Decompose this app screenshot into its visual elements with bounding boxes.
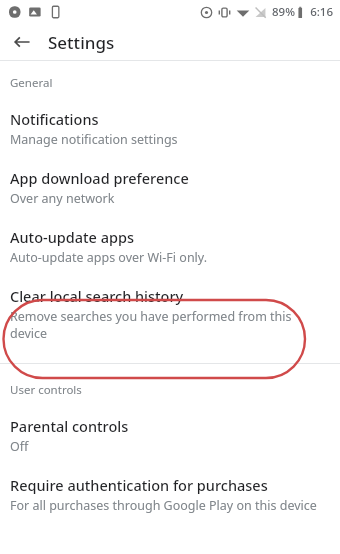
staticText: App download preference <box>10 168 189 188</box>
button[interactable]: Clear local search history <box>0 272 340 347</box>
staticText: Auto-update apps <box>10 227 134 247</box>
staticText: General <box>10 75 53 91</box>
staticText: Remove searches you have performed from … <box>10 308 326 341</box>
staticText: Parental controls <box>10 416 129 436</box>
staticText: Require authentication for purchases <box>10 475 268 495</box>
staticText: 89% <box>272 4 295 20</box>
button[interactable]: Require authentication for purchases <box>0 461 340 520</box>
staticText: User controls <box>10 382 82 398</box>
staticText: Clear local search history <box>10 286 184 306</box>
staticText: Settings <box>48 31 115 54</box>
staticText: Notifications <box>10 109 99 129</box>
staticText: Manage notification settings <box>10 131 178 148</box>
staticText: Auto-update apps over Wi-Fi only. <box>10 249 208 266</box>
button[interactable]: Parental controls <box>0 402 340 461</box>
staticText: 6:16 <box>310 4 333 20</box>
button[interactable]: Back <box>8 28 36 56</box>
staticText: For all purchases through Google Play on… <box>10 497 317 514</box>
button[interactable]: Auto-update apps <box>0 213 340 272</box>
staticText: Over any network <box>10 190 115 207</box>
button[interactable]: Notifications <box>0 95 340 154</box>
staticText: Off <box>10 438 29 455</box>
button[interactable]: App download preference <box>0 154 340 213</box>
